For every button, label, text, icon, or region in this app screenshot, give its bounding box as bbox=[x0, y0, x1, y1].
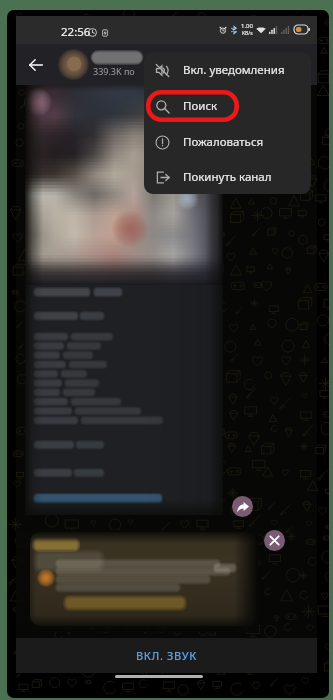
staticText: 339.3K по bbox=[93, 65, 135, 77]
button[interactable]: Поиск bbox=[144, 88, 311, 124]
button[interactable]: Вкл. уведомления bbox=[144, 52, 311, 88]
staticText: Вкл. уведомления bbox=[183, 62, 285, 78]
button[interactable]: Forward bbox=[232, 496, 253, 517]
button[interactable]: Close bbox=[264, 530, 285, 551]
staticText: Пожаловаться bbox=[183, 134, 264, 150]
staticText: 22:56 bbox=[61, 24, 91, 40]
button[interactable]: Пожаловаться bbox=[144, 124, 311, 160]
staticText: ВКЛ. ЗВУК bbox=[136, 648, 197, 663]
staticText: Покинуть канал bbox=[183, 169, 272, 185]
button[interactable]: ВКЛ. ЗВУК bbox=[16, 638, 317, 673]
button[interactable]: Покинуть канал bbox=[144, 160, 311, 194]
button[interactable]: 339.3K по bbox=[59, 50, 141, 79]
staticText: 1.00 bbox=[241, 22, 253, 30]
staticText: Поиск bbox=[183, 98, 218, 114]
button[interactable]: Back bbox=[23, 52, 49, 78]
staticText: KB/s bbox=[242, 30, 253, 37]
